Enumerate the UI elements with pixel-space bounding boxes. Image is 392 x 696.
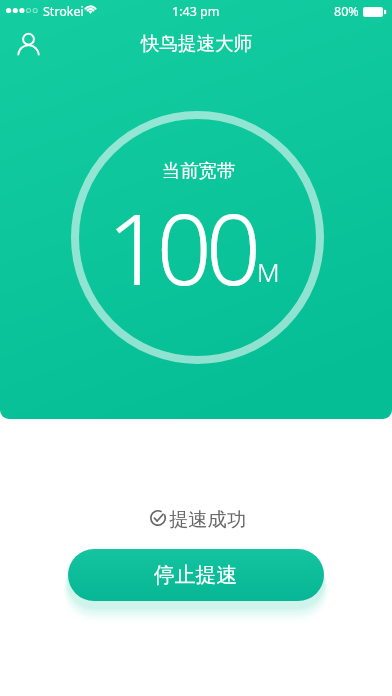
button[interactable]: 停止提速 (68, 549, 324, 601)
button[interactable]: Account (10, 26, 46, 62)
staticText: M (257, 254, 280, 289)
staticText: 提速成功 (169, 507, 247, 531)
staticText: 100 (107, 181, 256, 313)
staticText: Strokei (43, 3, 84, 20)
staticText: 快鸟提速大师 (141, 32, 252, 55)
staticText: 停止提速 (154, 562, 238, 588)
staticText: 1:43 pm (172, 3, 220, 20)
staticText: 80% (334, 3, 359, 20)
staticText: 当前宽带 (162, 159, 236, 182)
